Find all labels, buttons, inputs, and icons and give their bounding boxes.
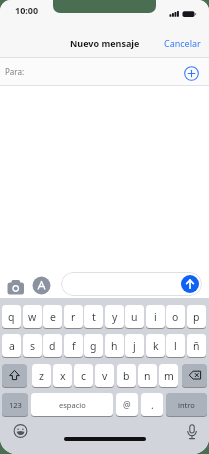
staticText: f — [72, 339, 76, 353]
button[interactable] — [32, 276, 51, 295]
button[interactable] — [61, 272, 202, 296]
button[interactable]: d — [43, 334, 62, 357]
button[interactable] — [181, 275, 199, 293]
button[interactable]: n — [138, 364, 157, 387]
staticText: j — [133, 339, 136, 353]
button[interactable]: h — [105, 334, 124, 357]
button[interactable]: Cancelar — [160, 33, 205, 53]
button[interactable]: w — [23, 305, 42, 328]
button[interactable]: l — [166, 334, 185, 357]
button[interactable]: r — [64, 305, 83, 328]
staticText: x — [60, 369, 66, 383]
button[interactable]: s — [23, 334, 42, 357]
staticText: v — [102, 369, 108, 383]
staticText: p — [193, 310, 200, 324]
staticText: b — [123, 369, 130, 383]
button[interactable] — [4, 277, 28, 297]
button[interactable]: a — [2, 334, 21, 357]
button[interactable]: i — [146, 305, 165, 328]
staticText: e — [50, 310, 56, 324]
staticText: g — [90, 339, 97, 353]
button[interactable]: . — [141, 393, 163, 416]
button[interactable] — [2, 364, 27, 387]
staticText: @ — [123, 399, 131, 411]
staticText: ñ — [193, 339, 200, 353]
staticText: Nuevo mensaje — [70, 37, 140, 49]
button[interactable]: f — [64, 334, 83, 357]
staticText: Para: — [5, 66, 25, 77]
button[interactable]: 123 — [2, 393, 28, 416]
staticText: l — [174, 339, 177, 353]
button[interactable]: g — [84, 334, 103, 357]
staticText: Cancelar — [164, 37, 201, 49]
button[interactable]: u — [125, 305, 144, 328]
button[interactable]: b — [117, 364, 136, 387]
staticText: . — [151, 398, 154, 412]
button[interactable]: k — [146, 334, 165, 357]
button[interactable]: m — [159, 364, 178, 387]
staticText: a — [9, 339, 15, 353]
staticText: w — [28, 310, 37, 324]
staticText: 123 — [9, 400, 22, 410]
button[interactable]: c — [74, 364, 93, 387]
staticText: u — [131, 310, 138, 324]
staticText: z — [39, 369, 44, 383]
staticText: espacio — [59, 400, 86, 410]
button[interactable]: t — [84, 305, 103, 328]
staticText: k — [153, 339, 159, 353]
button[interactable]: z — [32, 364, 51, 387]
button[interactable]: y — [105, 305, 124, 328]
staticText: c — [81, 369, 87, 383]
staticText: intro — [178, 400, 195, 410]
staticText: i — [154, 310, 157, 324]
staticText: 10:00 — [15, 4, 39, 16]
button[interactable]: p — [187, 305, 206, 328]
staticText: q — [8, 310, 15, 324]
button[interactable]: v — [95, 364, 114, 387]
button[interactable]: e — [43, 305, 62, 328]
button[interactable] — [182, 422, 202, 442]
staticText: t — [92, 310, 96, 324]
button[interactable]: o — [166, 305, 185, 328]
staticText: y — [112, 310, 118, 324]
button[interactable]: j — [125, 334, 144, 357]
staticText: s — [30, 339, 36, 353]
button[interactable]: q — [2, 305, 21, 328]
staticText: o — [172, 310, 179, 324]
button[interactable]: intro — [166, 393, 207, 416]
button[interactable] — [10, 420, 31, 441]
staticText: h — [111, 339, 118, 353]
button[interactable] — [182, 364, 207, 387]
button[interactable]: espacio — [31, 393, 113, 416]
staticText: r — [71, 310, 76, 324]
button[interactable]: @ — [116, 393, 138, 416]
staticText: n — [144, 369, 151, 383]
staticText: d — [49, 339, 56, 353]
button[interactable]: ñ — [187, 334, 206, 357]
button[interactable]: Para: — [0, 58, 209, 85]
staticText: m — [164, 369, 174, 383]
button[interactable]: x — [53, 364, 72, 387]
